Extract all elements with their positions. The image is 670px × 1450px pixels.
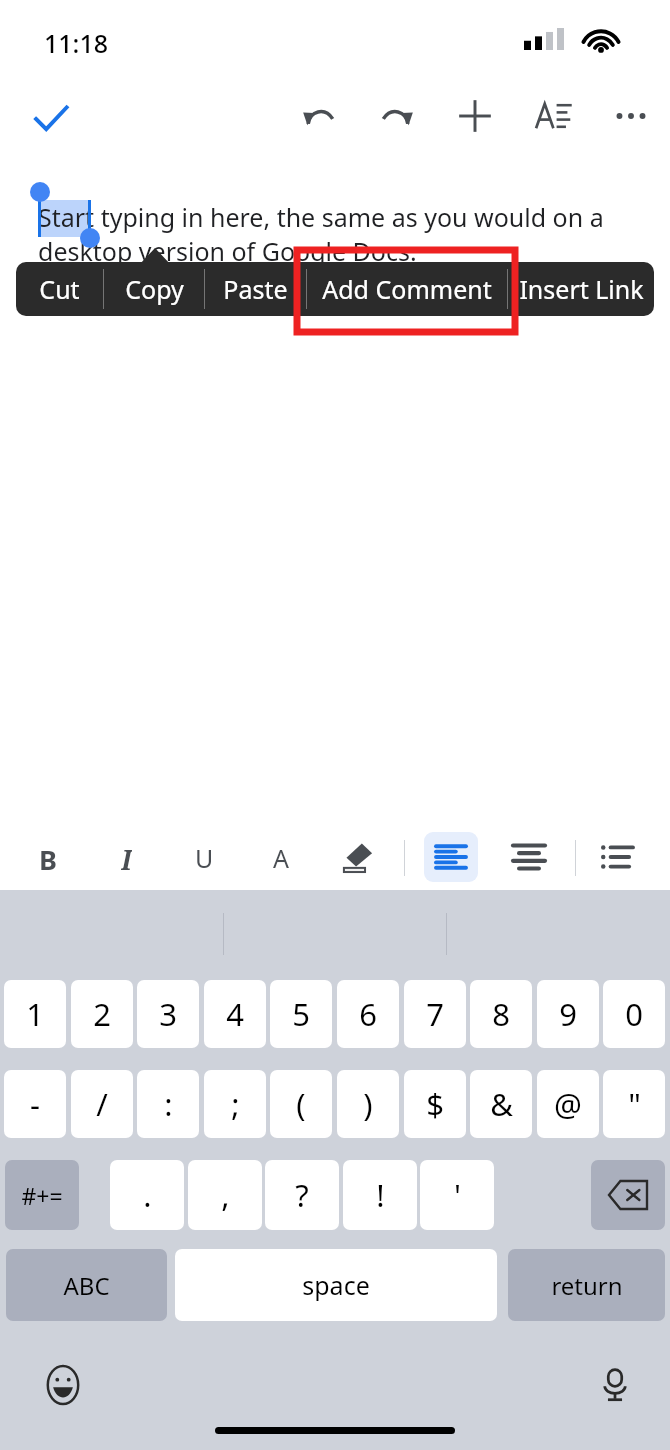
button[interactable]: Add Comment — [307, 262, 507, 316]
staticText: desktop version of Google Docs. — [38, 234, 417, 268]
staticText: ABC — [63, 1269, 110, 1302]
staticText: / — [96, 1083, 108, 1125]
button[interactable]: : — [137, 1070, 199, 1138]
staticText: 6 — [359, 993, 377, 1035]
button[interactable]: ? — [265, 1160, 339, 1230]
button[interactable]: Undo — [290, 87, 348, 145]
button[interactable]: 4 — [204, 980, 266, 1048]
button[interactable]: Insert — [446, 87, 504, 145]
staticText: ? — [295, 1174, 309, 1216]
staticText: U — [195, 841, 214, 873]
staticText: 9 — [559, 993, 577, 1035]
staticText: ( — [296, 1083, 306, 1125]
staticText: I — [121, 841, 132, 873]
button[interactable]: Emoji — [40, 1362, 86, 1408]
button[interactable]: ! — [343, 1160, 417, 1230]
staticText: 1 — [26, 993, 44, 1035]
button[interactable]: 6 — [337, 980, 399, 1048]
button[interactable]: 5 — [270, 980, 332, 1048]
staticText: 0 — [625, 993, 643, 1035]
button[interactable]: 8 — [470, 980, 532, 1048]
button[interactable]: , — [188, 1160, 262, 1230]
staticText: space — [302, 1268, 370, 1302]
button[interactable]: ; — [204, 1070, 266, 1138]
button[interactable]: Bold — [21, 830, 75, 884]
staticText: , — [221, 1174, 230, 1216]
button[interactable]: space — [175, 1249, 497, 1321]
staticText: " — [628, 1083, 641, 1125]
button[interactable]: More options — [602, 87, 660, 145]
button[interactable]: Italic — [99, 830, 153, 884]
staticText: A — [273, 841, 289, 873]
staticText: 3 — [159, 993, 177, 1035]
button[interactable]: & — [470, 1070, 532, 1138]
button[interactable]: Insert Link — [508, 262, 654, 316]
button[interactable]: $ — [404, 1070, 466, 1138]
button[interactable]: . — [110, 1160, 184, 1230]
button[interactable]: Text formatting — [524, 87, 582, 145]
button[interactable]: - — [4, 1070, 66, 1138]
staticText: : — [164, 1083, 173, 1125]
button[interactable]: return — [508, 1249, 665, 1321]
button[interactable]: Backspace — [591, 1160, 665, 1230]
button[interactable]: " — [603, 1070, 665, 1138]
button[interactable]: ABC — [6, 1249, 167, 1321]
staticText: Cut — [39, 272, 80, 306]
button[interactable]: Bulleted list — [590, 830, 644, 884]
button[interactable]: Align left — [424, 832, 478, 882]
button[interactable]: 3 — [137, 980, 199, 1048]
button[interactable]: ' — [420, 1160, 494, 1230]
staticText: Add Comment — [322, 272, 492, 306]
staticText: . — [143, 1174, 152, 1216]
staticText: 5 — [292, 993, 310, 1035]
staticText: & — [490, 1083, 513, 1125]
staticText: @ — [554, 1083, 582, 1125]
button[interactable]: Copy — [104, 262, 204, 316]
button[interactable]: Highlight — [331, 830, 385, 884]
button[interactable]: / — [71, 1070, 133, 1138]
button[interactable]: Paste — [205, 262, 306, 316]
button[interactable]: Underline — [177, 830, 231, 884]
button[interactable]: 0 — [603, 980, 665, 1048]
staticText: 11:18 — [44, 26, 109, 60]
button[interactable]: @ — [537, 1070, 599, 1138]
staticText: ; — [231, 1083, 240, 1125]
staticText: 2 — [93, 993, 111, 1035]
staticText: Paste — [223, 272, 288, 306]
staticText: #+= — [21, 1180, 63, 1211]
staticText: Insert Link — [519, 272, 644, 306]
button[interactable]: 1 — [4, 980, 66, 1048]
staticText: 4 — [226, 993, 244, 1035]
staticText: ' — [454, 1174, 461, 1216]
button[interactable]: #+= — [5, 1160, 79, 1230]
button[interactable]: Text color — [254, 830, 308, 884]
staticText: B — [39, 841, 57, 873]
button[interactable]: Redo — [368, 87, 426, 145]
staticText: 7 — [426, 993, 444, 1035]
staticText: ) — [363, 1083, 373, 1125]
button[interactable]: Dictate — [592, 1362, 638, 1408]
staticText: $ — [426, 1083, 444, 1125]
staticText: - — [30, 1083, 40, 1125]
button[interactable]: 9 — [537, 980, 599, 1048]
staticText: return — [551, 1269, 623, 1302]
button[interactable]: 2 — [71, 980, 133, 1048]
button[interactable]: ( — [270, 1070, 332, 1138]
staticText: 8 — [492, 993, 510, 1035]
button[interactable]: Done — [20, 88, 82, 150]
button[interactable]: Cut — [16, 262, 103, 316]
button[interactable]: Align center — [502, 830, 556, 884]
staticText: ! — [376, 1174, 385, 1216]
staticText: Start typing in here, the same as you wo… — [38, 200, 604, 234]
button[interactable]: ) — [337, 1070, 399, 1138]
staticText: Copy — [125, 272, 184, 306]
button[interactable]: 7 — [404, 980, 466, 1048]
